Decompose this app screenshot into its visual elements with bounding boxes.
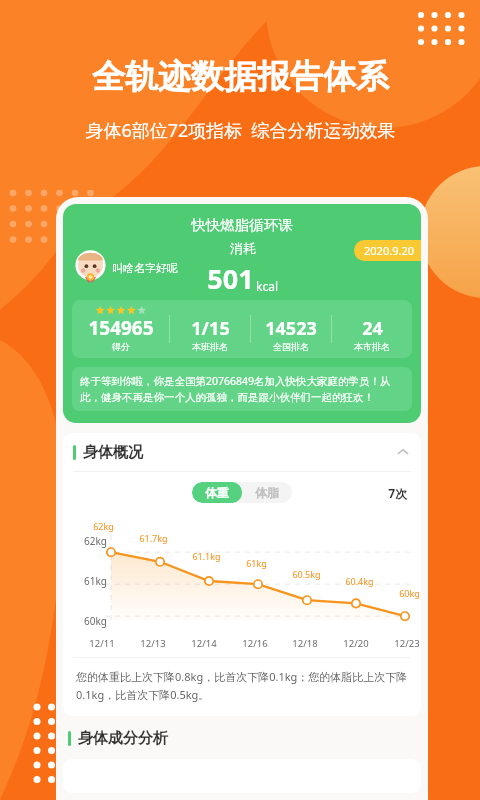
staticText: 12/11 <box>89 637 115 650</box>
staticText: 身体6部位72项指标 综合分析运动效果 <box>85 118 396 143</box>
staticText: 全轨迹数据报告体系 <box>92 56 389 98</box>
staticText: 12/20 <box>343 637 369 650</box>
staticText: 62kg <box>84 534 107 548</box>
staticText: 终于等到你啦，你是全国第20766849名加入快快大家庭的学员！从此，健身不再是… <box>80 374 404 404</box>
staticText: 62kg <box>93 520 114 532</box>
staticText: 1/15 <box>191 316 230 341</box>
staticText: 身体概况 <box>83 443 143 462</box>
staticText: 60kg <box>399 587 420 599</box>
button[interactable]: 身体概况 <box>63 433 421 471</box>
button[interactable]: 2020.9.20 <box>354 240 421 261</box>
staticText: 61.7kg <box>139 532 168 544</box>
staticText: 本班排名 <box>192 341 228 352</box>
staticText: 2020.9.20 <box>364 243 414 258</box>
staticText: 60kg <box>84 614 107 628</box>
staticText: 12/13 <box>140 637 166 650</box>
staticText: 12/23 <box>394 637 420 650</box>
staticText: 得分 <box>112 341 130 352</box>
staticText: 全国排名 <box>273 341 309 352</box>
staticText: 本市排名 <box>354 341 390 352</box>
staticText: 61.1kg <box>192 550 221 562</box>
staticText: 12/16 <box>242 637 268 650</box>
button[interactable]: 体重 <box>192 482 242 503</box>
staticText: 体重 <box>205 485 229 500</box>
staticText: 快快燃脂循环课 <box>63 216 421 234</box>
staticText: 61kg <box>84 574 107 588</box>
staticText: 60.5kg <box>292 568 321 580</box>
staticText: 12/14 <box>191 637 217 650</box>
staticText: 14523 <box>265 316 317 341</box>
staticText: 61kg <box>246 557 267 569</box>
staticText: 叫啥名字好呢 <box>112 261 178 275</box>
staticText: 501 <box>207 260 254 297</box>
staticText: 24 <box>362 316 383 341</box>
staticText: 154965 <box>88 315 154 341</box>
staticText: 60.4kg <box>345 575 374 587</box>
staticText: 体脂 <box>255 485 279 500</box>
staticText: 您的体重比上次下降0.8kg，比首次下降0.1kg；您的体脂比上次下降0.1kg… <box>76 669 408 702</box>
other: Collapse <box>395 444 411 460</box>
staticText: kcal <box>256 278 278 294</box>
button[interactable]: 体脂 <box>242 482 292 503</box>
staticText: 消耗 <box>230 240 256 256</box>
button[interactable]: 快快燃脂循环课 <box>63 204 421 423</box>
staticText: 12/18 <box>292 637 318 650</box>
staticText: 身体成分分析 <box>78 729 168 748</box>
staticText: 7次 <box>388 485 407 501</box>
